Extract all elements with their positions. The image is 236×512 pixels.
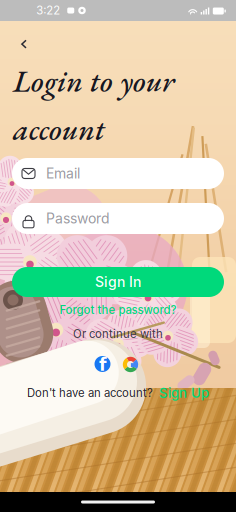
button[interactable]: Email bbox=[12, 158, 224, 189]
staticText: f bbox=[99, 355, 107, 375]
staticText: Forgot the password? bbox=[59, 303, 176, 317]
staticText: Sign In bbox=[95, 273, 141, 290]
button[interactable]: Sign Up bbox=[159, 385, 209, 401]
staticText: Email bbox=[46, 165, 80, 182]
staticText: Don't have an account? bbox=[27, 386, 153, 400]
button[interactable]: Password bbox=[12, 203, 224, 234]
button[interactable]: Back bbox=[11, 31, 37, 57]
button[interactable]: Continue with Google bbox=[122, 356, 139, 373]
button[interactable]: Forgot the password? bbox=[59, 303, 176, 317]
button[interactable]: Continue with Facebook bbox=[94, 356, 110, 372]
staticText: Sign Up bbox=[159, 385, 209, 401]
staticText: Login to your bbox=[13, 61, 174, 101]
button[interactable]: Sign In bbox=[12, 267, 224, 297]
staticText: 3:22 bbox=[36, 4, 60, 17]
staticText: Or continue with bbox=[73, 327, 163, 341]
staticText: account bbox=[13, 109, 105, 149]
staticText: Password bbox=[46, 210, 110, 227]
